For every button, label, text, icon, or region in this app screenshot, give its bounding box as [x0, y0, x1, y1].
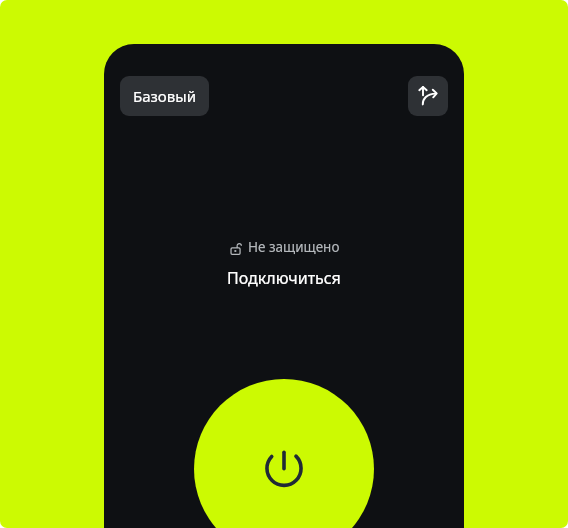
- button[interactable]: Подключиться: [194, 379, 374, 528]
- button[interactable]: Раздельное туннелирование: [408, 76, 448, 116]
- staticText: Не защищено: [248, 238, 340, 256]
- staticText: Подключиться: [227, 267, 341, 289]
- button[interactable]: Базовый: [120, 76, 209, 116]
- staticText: Базовый: [133, 86, 196, 106]
